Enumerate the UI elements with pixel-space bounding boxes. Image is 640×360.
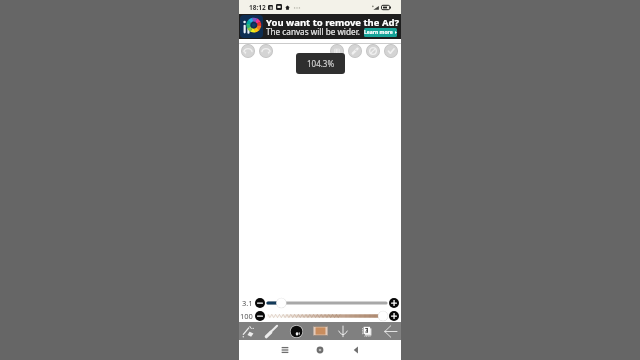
button[interactable]: Back	[345, 340, 367, 360]
staticText: 3.1	[242, 298, 253, 308]
button[interactable]: Home	[309, 340, 331, 360]
staticText: 104.3%	[307, 58, 335, 69]
button[interactable]: Decrease 3.1	[255, 298, 265, 308]
staticText: You want to remove the Ad?	[266, 16, 400, 29]
staticText: The canvas will be wider.	[266, 26, 360, 37]
staticText: 18:12	[249, 3, 266, 12]
button[interactable]: Material	[366, 44, 380, 58]
button[interactable]: Brush	[260, 322, 282, 340]
staticText: 100	[240, 311, 253, 321]
button[interactable]: Slider 3.1	[267, 297, 387, 309]
button[interactable]: Palette	[309, 322, 331, 340]
button[interactable]: Learn more	[364, 28, 397, 37]
button[interactable]: Back	[379, 322, 401, 340]
button[interactable]: Colour	[285, 322, 307, 340]
button[interactable]: You want to remove the Ad?	[239, 14, 401, 39]
button[interactable]: Fill	[332, 322, 354, 340]
button[interactable]: Undo	[241, 44, 255, 58]
button[interactable]: Redo	[259, 44, 273, 58]
button[interactable]: Increase 100	[389, 311, 399, 321]
button[interactable]: Recents	[274, 340, 296, 360]
button[interactable]: Import photo	[330, 44, 344, 58]
button[interactable]: Slider 100	[267, 310, 387, 322]
button[interactable]: Increase 3.1	[389, 298, 399, 308]
button[interactable]: Transform	[237, 322, 259, 340]
button[interactable]: Layers	[356, 322, 378, 340]
staticText: Learn more	[364, 29, 393, 36]
button[interactable]: Tools	[384, 44, 398, 58]
button[interactable]: Filters	[348, 44, 362, 58]
button[interactable]: Decrease 100	[255, 311, 265, 321]
